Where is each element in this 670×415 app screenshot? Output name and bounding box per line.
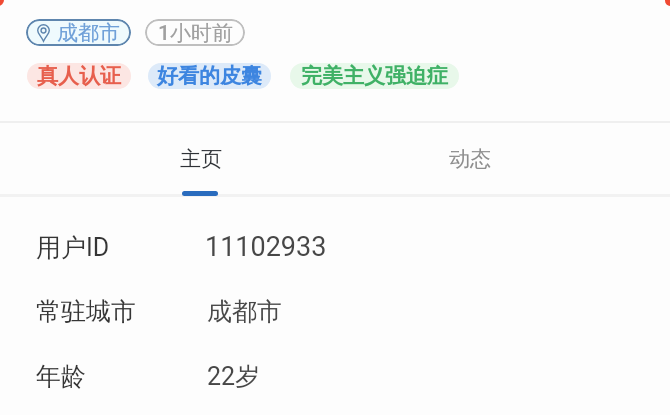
other: Marker [665, 0, 670, 6]
staticText: 好看的皮囊 [157, 63, 262, 89]
staticText: 年龄 [36, 361, 86, 392]
button[interactable]: 年龄 [0, 355, 670, 397]
button[interactable]: 好看的皮囊 [148, 63, 271, 89]
button[interactable]: 常驻城市 [0, 290, 670, 332]
button[interactable]: 动态 [439, 142, 501, 176]
staticText: 主页 [180, 146, 222, 172]
staticText: 用户ID [36, 232, 110, 263]
button[interactable]: 用户ID [0, 226, 670, 268]
button[interactable]: 成都市 [26, 19, 131, 46]
staticText: 动态 [449, 146, 491, 172]
staticText: 成都市 [207, 296, 282, 327]
staticText: 1小时前 [158, 20, 233, 46]
other: Marker [0, 0, 4, 6]
staticText: 成都市 [57, 20, 120, 46]
staticText: 22岁 [207, 361, 261, 392]
button[interactable]: 完美主义强迫症 [290, 63, 459, 89]
staticText: 真人认证 [37, 63, 121, 89]
button[interactable]: 真人认证 [27, 63, 131, 89]
staticText: 11102933 [205, 231, 327, 263]
staticText: 完美主义强迫症 [301, 63, 448, 89]
button[interactable]: 主页 [170, 142, 232, 176]
button[interactable]: 1小时前 [145, 19, 245, 46]
staticText: 常驻城市 [36, 296, 136, 327]
